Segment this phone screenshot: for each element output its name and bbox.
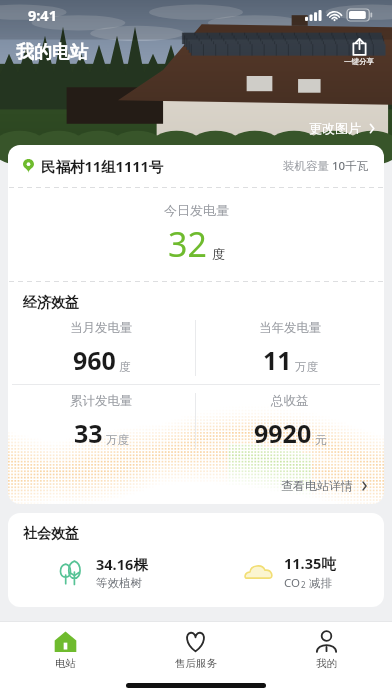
staticText: 一键分享 [344, 57, 374, 66]
staticText: 万度 [106, 433, 129, 447]
staticText: 减排 [306, 575, 332, 591]
staticText: 33 [74, 416, 103, 450]
staticText: 10千瓦 [332, 158, 369, 174]
button[interactable]: 34.16棵 [8, 554, 196, 590]
staticText: 更改图片 [309, 120, 361, 136]
button[interactable]: 查看电站详情 [278, 476, 371, 495]
staticText: 元 [315, 433, 327, 447]
staticText: 34.16棵 [96, 554, 148, 574]
staticText: CO [284, 575, 301, 591]
staticText: 960 [73, 343, 116, 377]
staticText: 累计发电量 [70, 393, 133, 409]
staticText: 当年发电量 [259, 320, 322, 336]
button[interactable]: 当年发电量 [196, 320, 384, 377]
button[interactable]: 电站 [0, 622, 130, 670]
staticText: 11.35吨 [284, 553, 336, 573]
button[interactable]: 11.35吨 [196, 553, 384, 591]
staticText: 今日发电量 [164, 202, 229, 218]
staticText: 售后服务 [175, 657, 217, 670]
staticText: 总收益 [271, 393, 309, 409]
staticText: 9920 [254, 416, 312, 450]
staticText: 32 [168, 221, 207, 267]
button[interactable]: 更改图片 [305, 118, 380, 138]
staticText: 当月发电量 [70, 320, 133, 336]
staticText: 电站 [55, 657, 76, 670]
staticText: 社会效益 [23, 525, 79, 543]
button[interactable]: 一键分享 [340, 36, 378, 68]
staticText: 装机容量 [283, 158, 332, 174]
staticText: 我的 [316, 657, 337, 670]
staticText: 9:41 [28, 5, 57, 25]
button[interactable]: 累计发电量 [8, 393, 195, 450]
staticText: 查看电站详情 [281, 478, 353, 493]
staticText: 2 [301, 579, 306, 590]
staticText: 度 [119, 360, 131, 374]
staticText: 经济效益 [23, 294, 79, 312]
button[interactable]: 当月发电量 [8, 320, 195, 377]
staticText: 等效植树 [96, 576, 142, 590]
staticText: 民福村11组1111号 [41, 156, 164, 176]
button[interactable]: 总收益 [196, 393, 384, 450]
staticText: 我的电站 [16, 41, 88, 64]
button[interactable]: 我的 [261, 622, 392, 670]
staticText: 万度 [295, 360, 318, 374]
staticText: 11 [263, 343, 292, 377]
button[interactable]: 民福村11组1111号 [8, 145, 384, 187]
staticText: 度 [212, 246, 225, 262]
button[interactable]: 售后服务 [130, 622, 261, 670]
